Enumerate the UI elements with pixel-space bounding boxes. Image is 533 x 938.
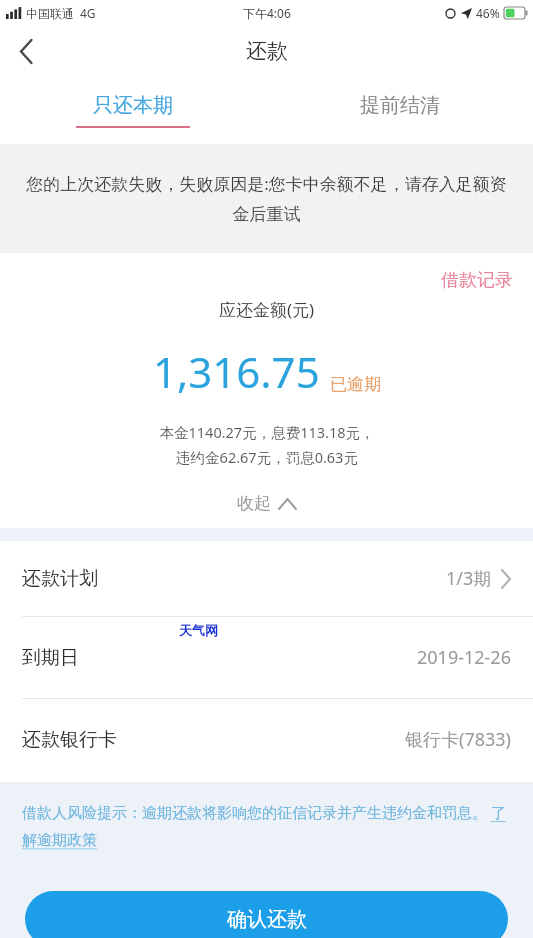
button[interactable]: 只还本期 bbox=[0, 77, 266, 144]
button[interactable]: 收起 bbox=[223, 489, 310, 518]
staticText: 中国联通 bbox=[26, 6, 74, 21]
button[interactable]: 借款记录 bbox=[441, 269, 513, 292]
button[interactable]: 返回 bbox=[0, 25, 52, 77]
staticText: 银行卡(7833) bbox=[405, 727, 511, 752]
staticText: 只还本期 bbox=[93, 93, 173, 118]
button[interactable]: 到期日 bbox=[0, 617, 533, 698]
staticText: 还款银行卡 bbox=[22, 728, 117, 752]
staticText: 天气网 bbox=[179, 622, 218, 638]
staticText: 收起 bbox=[237, 493, 271, 514]
button[interactable]: 确认还款 bbox=[25, 891, 508, 938]
staticText: 到期日 bbox=[22, 646, 79, 670]
button[interactable]: 还款银行卡 bbox=[0, 699, 533, 780]
staticText: 4G bbox=[80, 5, 96, 21]
staticText: 您的上次还款失败，失败原因是:您卡中余额不足，请存入足额资金后重试 bbox=[22, 172, 511, 225]
staticText: 确认还款 bbox=[227, 907, 307, 932]
staticText: 2019-12-26 bbox=[417, 645, 511, 670]
staticText: 下午4:06 bbox=[243, 5, 291, 21]
staticText: 提前结清 bbox=[360, 93, 440, 118]
button[interactable]: 还款计划 bbox=[0, 541, 533, 616]
staticText: 已逾期 bbox=[330, 374, 381, 395]
staticText: 1/3期 bbox=[446, 566, 492, 591]
staticText: 还款计划 bbox=[22, 567, 98, 591]
staticText: 应还金额(元) bbox=[219, 298, 315, 321]
staticText: 还款 bbox=[246, 38, 288, 64]
staticText: 46% bbox=[476, 5, 500, 21]
staticText: 本金1140.27元，息费113.18元， 违约金62.67元，罚息0.63元 bbox=[159, 422, 375, 467]
button[interactable]: 提前结清 bbox=[266, 77, 533, 144]
staticText: 1,316.75 bbox=[153, 343, 320, 400]
staticText: 借款人风险提示：逾期还款将影响您的征信记录并产生违约金和罚息。 了解逾期政策 bbox=[22, 802, 519, 850]
